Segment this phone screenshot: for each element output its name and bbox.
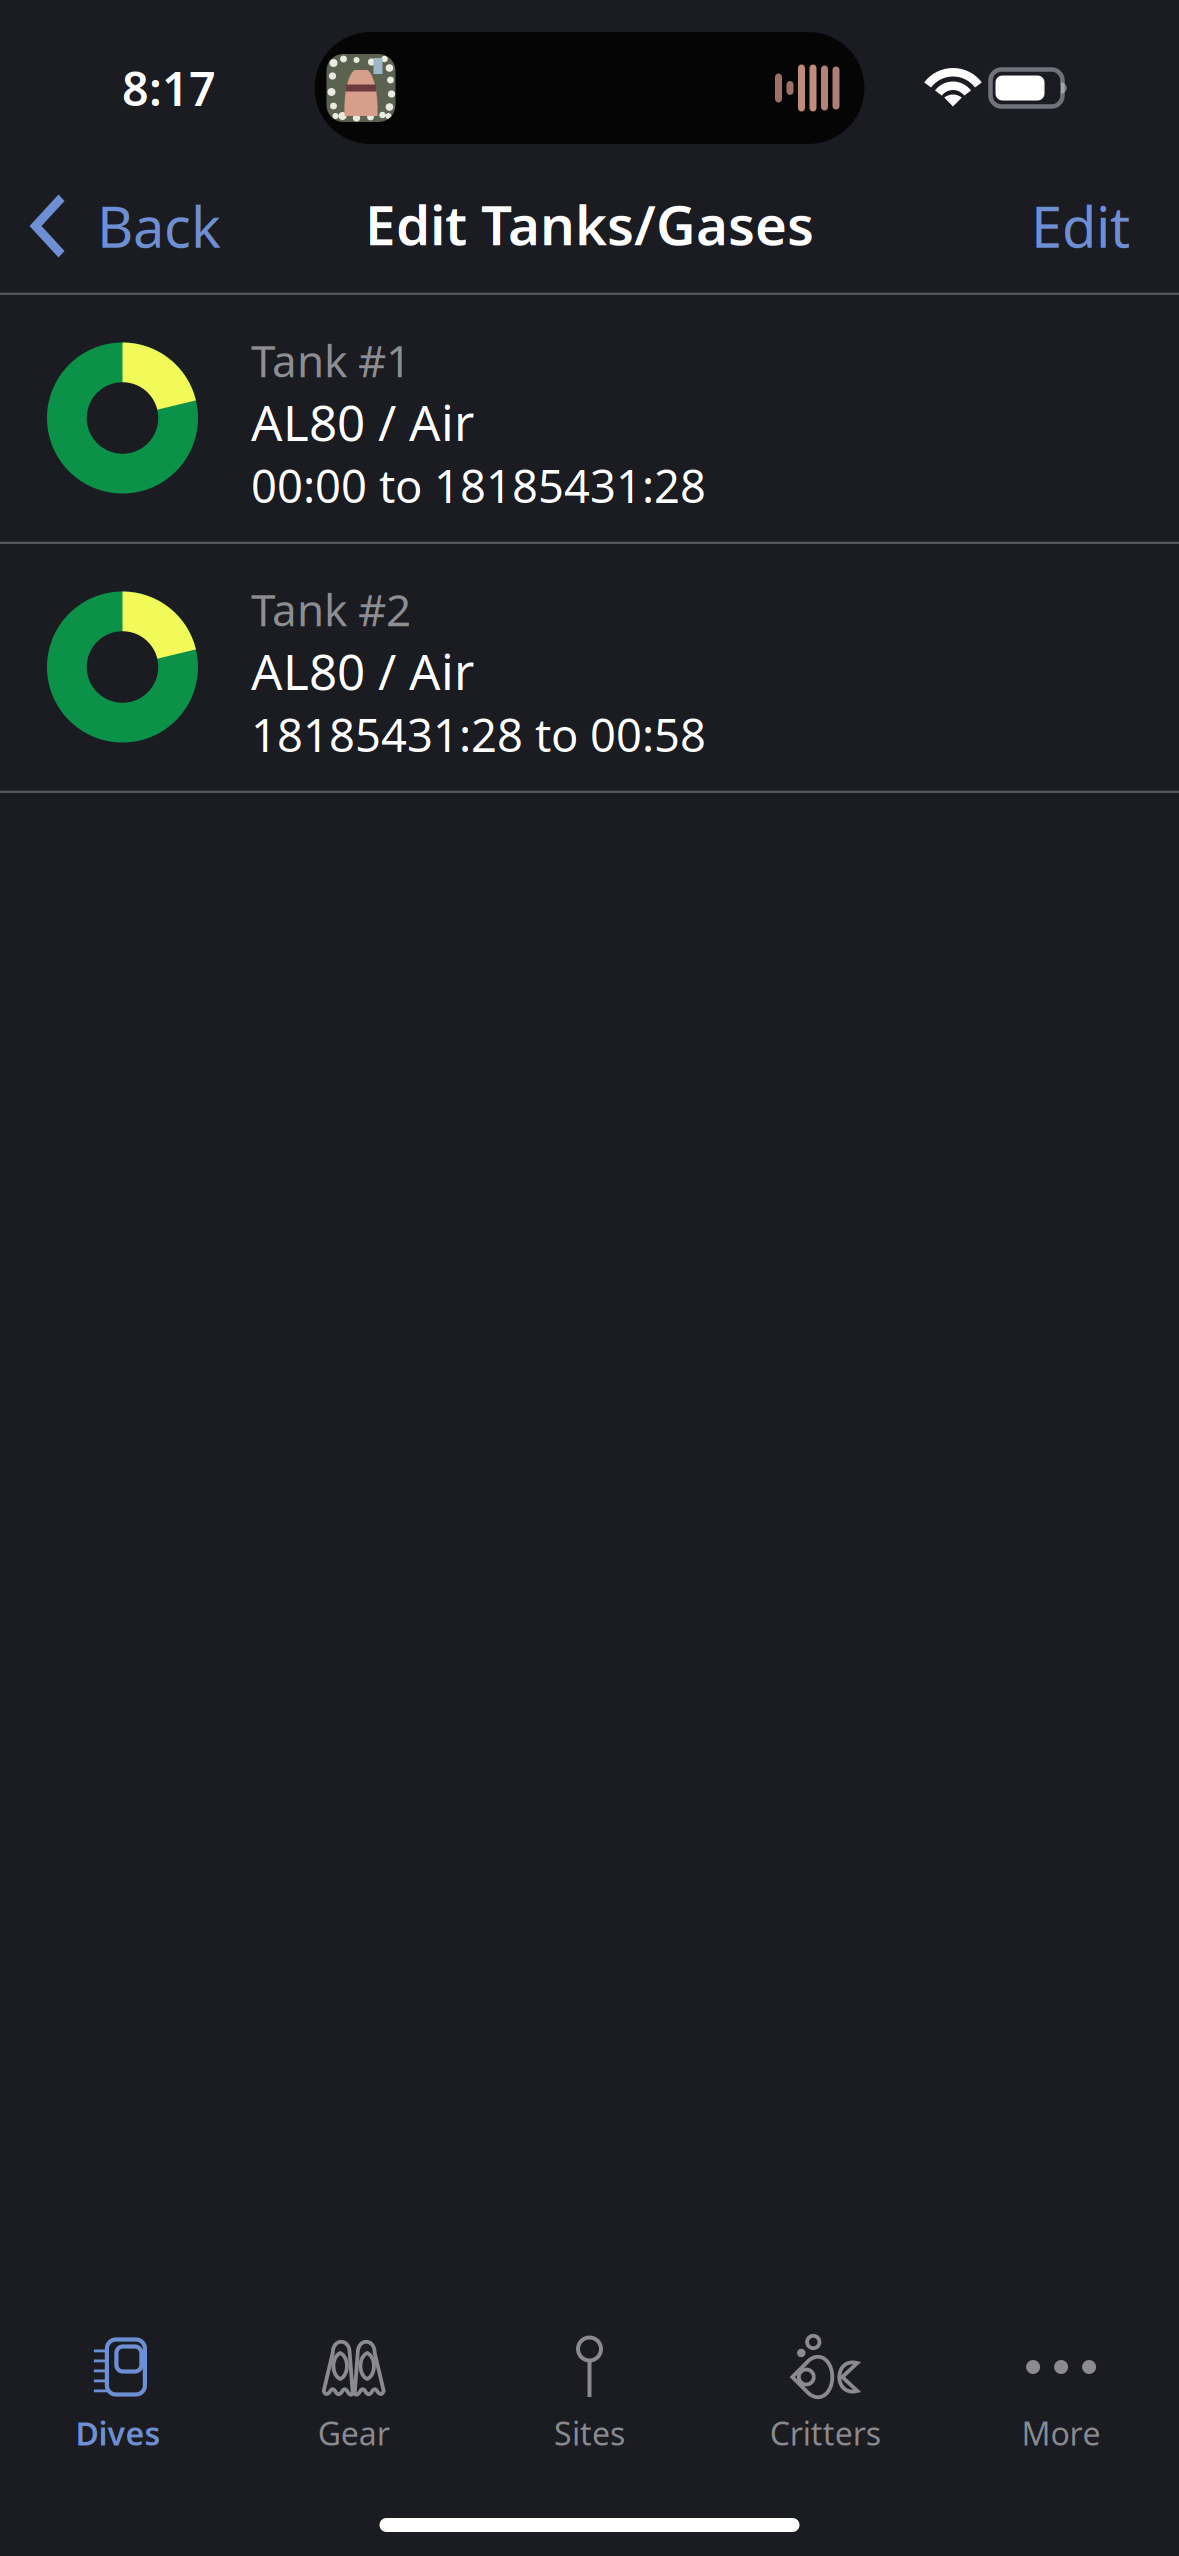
staticText: 18185431:28 to 00:58	[251, 704, 706, 764]
staticText: Edit	[1031, 189, 1130, 263]
button[interactable]: Back	[0, 183, 221, 285]
staticText: Gear	[318, 2412, 390, 2454]
button[interactable]: Dives	[0, 2327, 236, 2465]
staticText: Edit Tanks/Gases	[365, 188, 814, 260]
staticText: 00:00 to 18185431:28	[251, 455, 706, 515]
staticText: Tank #1	[251, 331, 411, 389]
button[interactable]: Critters	[707, 2327, 943, 2465]
staticText: AL80 / Air	[251, 638, 474, 703]
button[interactable]: Gear	[236, 2327, 472, 2465]
button[interactable]: Edit	[1031, 183, 1179, 285]
staticText: Back	[97, 189, 221, 263]
button[interactable]: More	[943, 2327, 1179, 2465]
staticText: Dives	[75, 2412, 160, 2454]
staticText: Tank #2	[251, 580, 411, 638]
button[interactable]: Tank #2	[0, 544, 1179, 790]
button[interactable]: Tank #1	[0, 295, 1179, 541]
staticText: Critters	[770, 2412, 881, 2454]
button[interactable]: Sites	[472, 2327, 707, 2465]
staticText: More	[1022, 2412, 1101, 2454]
staticText: Sites	[554, 2412, 625, 2454]
staticText: 8:17	[122, 57, 216, 119]
staticText: AL80 / Air	[251, 389, 474, 454]
